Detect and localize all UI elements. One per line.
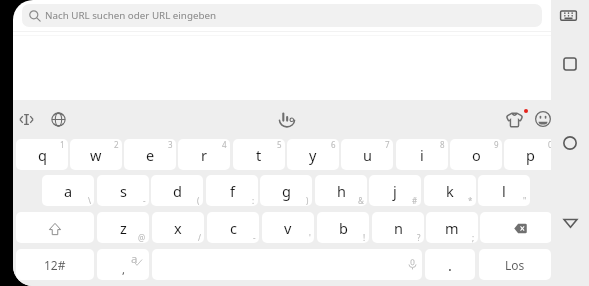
staticText: # — [412, 195, 418, 206]
button[interactable] — [480, 212, 552, 243]
button[interactable]: h — [315, 175, 367, 206]
staticText: u — [363, 145, 372, 165]
button[interactable]: 12# — [16, 249, 94, 280]
staticText: * — [468, 195, 473, 206]
staticText: ( — [197, 195, 200, 206]
button[interactable]: Keyboard menu — [273, 105, 301, 133]
staticText: i — [420, 145, 424, 165]
staticText: ! — [363, 232, 366, 243]
staticText: Nach URL suchen oder URL eingeben — [45, 9, 217, 22]
staticText: j — [393, 181, 397, 201]
button[interactable]: y — [287, 139, 339, 170]
button[interactable]: Back — [556, 208, 584, 236]
staticText: b — [339, 218, 348, 238]
button[interactable]: z — [97, 212, 149, 243]
staticText: . — [448, 255, 452, 275]
staticText: & — [358, 195, 364, 206]
button[interactable]: c — [207, 212, 259, 243]
staticText: 9 — [494, 139, 499, 150]
button[interactable]: t — [233, 139, 285, 170]
staticText: k — [446, 181, 454, 201]
staticText: 7 — [385, 139, 390, 150]
button[interactable]: r — [178, 139, 230, 170]
button[interactable]: Home — [556, 129, 584, 157]
button[interactable] — [16, 212, 94, 243]
staticText: v — [284, 218, 292, 238]
staticText: o — [472, 145, 481, 165]
staticText: " — [523, 195, 527, 206]
button[interactable]: i — [396, 139, 448, 170]
staticText: c — [230, 218, 237, 238]
button[interactable]: Themes — [500, 105, 528, 133]
button[interactable]: k — [424, 175, 476, 206]
staticText: d — [173, 181, 182, 201]
staticText: x — [174, 218, 182, 238]
button[interactable]: Recent apps — [556, 50, 584, 78]
staticText: w — [90, 145, 102, 165]
button[interactable]: b — [317, 212, 369, 243]
button[interactable]: Change language — [44, 105, 72, 133]
button[interactable]: Emoji — [529, 105, 557, 133]
button[interactable]: g — [260, 175, 312, 206]
staticText: y — [309, 145, 317, 165]
button[interactable]: . — [425, 249, 475, 280]
staticText: r — [201, 145, 207, 165]
button[interactable]: n — [372, 212, 424, 243]
button[interactable]: p — [504, 139, 556, 170]
staticText: e — [146, 145, 155, 165]
staticText: , — [122, 262, 125, 277]
staticText: @ — [138, 232, 146, 243]
staticText: - — [253, 232, 256, 243]
staticText: q — [38, 145, 47, 165]
button[interactable]: Nach URL suchen oder URL eingeben — [22, 4, 542, 27]
staticText: s — [120, 181, 127, 201]
button[interactable]: m — [426, 212, 478, 243]
staticText: 6 — [331, 139, 336, 150]
staticText: g — [282, 181, 291, 201]
button[interactable]: a — [97, 249, 149, 280]
staticText: h — [337, 181, 346, 201]
staticText: z — [120, 218, 127, 238]
button[interactable]: j — [369, 175, 421, 206]
button[interactable]: a — [42, 175, 94, 206]
button[interactable]: d — [151, 175, 203, 206]
button[interactable]: o — [450, 139, 502, 170]
staticText: m — [445, 218, 459, 238]
staticText: l — [502, 181, 506, 201]
staticText: t — [256, 145, 262, 165]
staticText: / — [198, 232, 201, 243]
staticText: 3 — [168, 139, 173, 150]
button[interactable]: v — [262, 212, 314, 243]
button[interactable]: Cursor control — [13, 105, 40, 133]
button[interactable]: l — [478, 175, 530, 206]
staticText: 5 — [277, 139, 282, 150]
button[interactable]: s — [97, 175, 149, 206]
staticText: a — [131, 251, 138, 267]
staticText: 4 — [222, 139, 227, 150]
staticText: ; — [472, 232, 475, 243]
button[interactable]: Los — [479, 249, 551, 280]
staticText: ) — [306, 195, 309, 206]
button[interactable]: w — [70, 139, 122, 170]
staticText: 12# — [44, 257, 66, 273]
staticText: - — [143, 195, 146, 206]
staticText: 2 — [114, 139, 119, 150]
staticText: a — [64, 181, 73, 201]
staticText: 8 — [440, 139, 445, 150]
staticText: \ — [88, 195, 91, 206]
button[interactable]: q — [16, 139, 68, 170]
staticText: p — [526, 145, 535, 165]
staticText: : — [252, 195, 255, 206]
staticText: 1 — [60, 139, 65, 150]
staticText: 0 — [548, 139, 553, 150]
button[interactable]: u — [341, 139, 393, 170]
staticText: n — [394, 218, 403, 238]
staticText: f — [230, 181, 235, 201]
button[interactable]: Hide keyboard — [554, 1, 582, 29]
staticText: ' — [309, 232, 311, 243]
button[interactable]: f — [206, 175, 258, 206]
button[interactable]: x — [152, 212, 204, 243]
staticText: Los — [505, 257, 525, 273]
button[interactable]: e — [124, 139, 176, 170]
